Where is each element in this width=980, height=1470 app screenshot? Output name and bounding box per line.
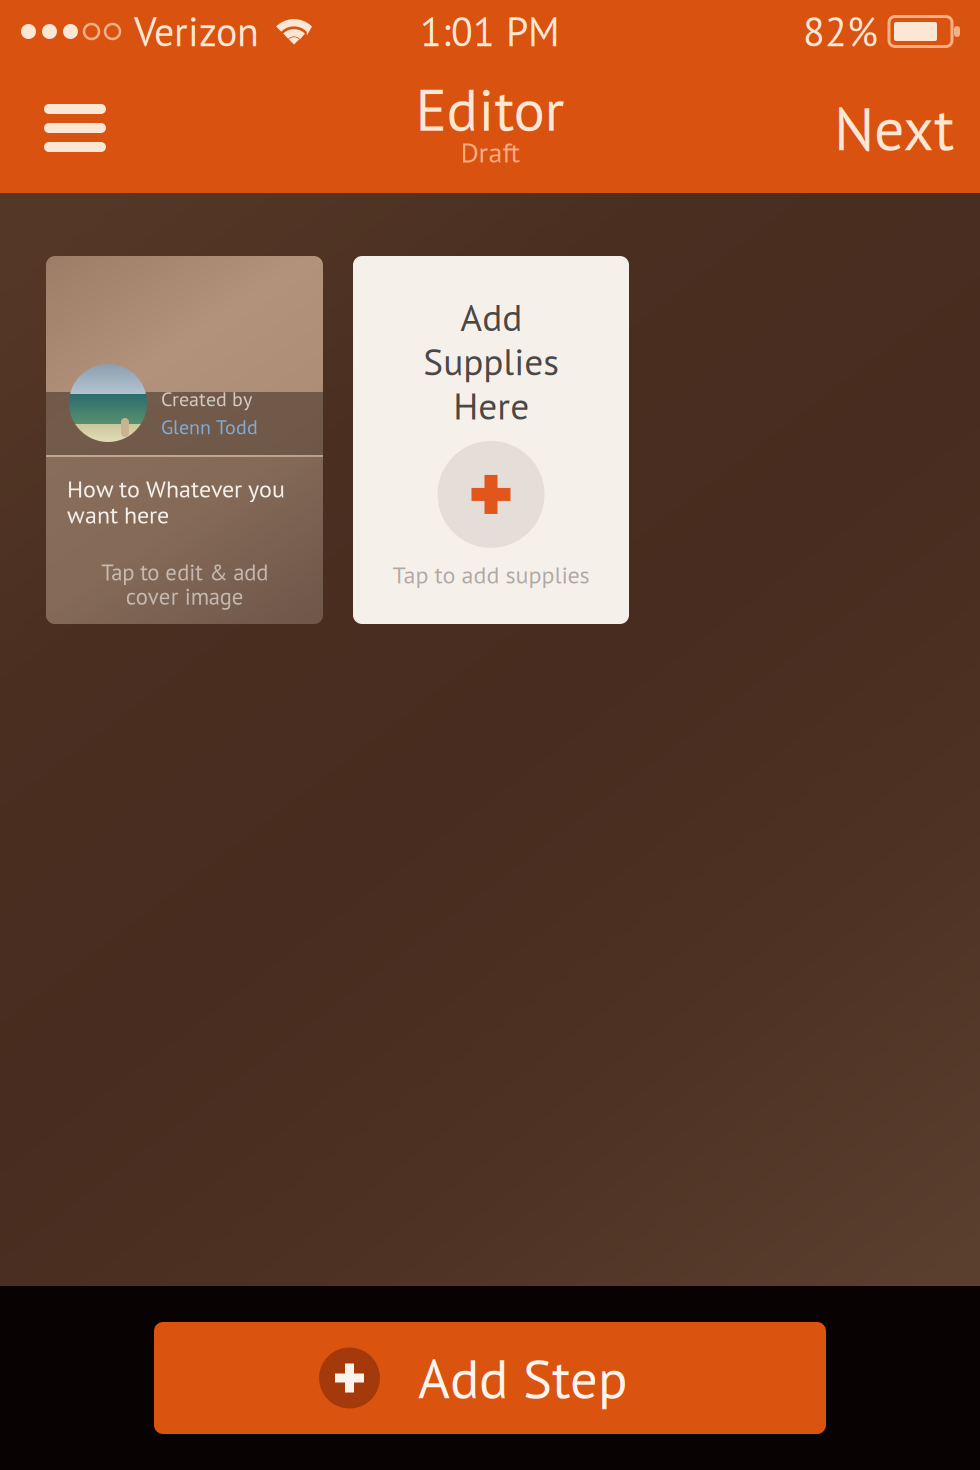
staticText: How to Whatever you want here	[67, 473, 285, 530]
button[interactable]: Next	[810, 70, 978, 186]
button[interactable]: Created by	[46, 256, 323, 624]
staticText: Next	[834, 89, 954, 167]
staticText: Draft	[460, 134, 519, 170]
staticText: 82%	[803, 6, 878, 57]
staticText: Tap to add supplies	[392, 559, 589, 590]
staticText: Editor	[415, 71, 564, 147]
staticText: Add Supplies Here	[423, 293, 559, 430]
staticText: 1:01 PM	[420, 6, 560, 57]
button[interactable]: Menu	[20, 70, 130, 186]
button[interactable]: Add Supplies Here	[353, 256, 629, 624]
staticText: Tap to edit & add cover image	[101, 557, 268, 611]
staticText: Glenn Todd	[161, 414, 258, 440]
staticText: Add Step	[418, 1343, 628, 1413]
staticText: Verizon	[134, 6, 259, 57]
staticText: Created by	[161, 386, 252, 412]
button[interactable]: Add Step	[154, 1322, 826, 1434]
